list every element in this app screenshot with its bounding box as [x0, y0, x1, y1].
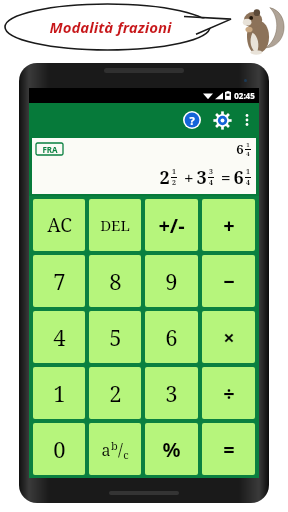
button[interactable]: 5 [89, 311, 141, 363]
button[interactable]: 9 [145, 255, 198, 307]
staticText: 3 [165, 378, 178, 408]
staticText: Modalità frazioni [49, 17, 172, 37]
staticText: 0 [53, 434, 66, 464]
staticText: / [118, 438, 123, 461]
staticText: 3 [209, 167, 213, 177]
staticText: 1 [246, 141, 250, 149]
button[interactable]: Settings [209, 107, 235, 133]
staticText: + [177, 166, 196, 189]
button[interactable]: a [89, 423, 141, 475]
button[interactable]: × [202, 311, 255, 363]
staticText: c [123, 447, 129, 462]
button[interactable]: 3 [145, 367, 198, 419]
staticText: b [111, 438, 118, 453]
staticText: ? [189, 113, 195, 128]
staticText: 6 [236, 140, 244, 158]
staticText: = [223, 436, 235, 463]
staticText: 6 [165, 322, 178, 352]
button[interactable]: AC [33, 199, 85, 251]
staticText: FRA [42, 144, 58, 155]
staticText: 4 [53, 322, 66, 352]
staticText: a [101, 439, 111, 461]
staticText: DEL [100, 215, 130, 235]
staticText: 4 [246, 150, 250, 158]
staticText: − [223, 268, 235, 295]
button[interactable]: DEL [89, 199, 141, 251]
staticText: 7 [53, 266, 66, 296]
button[interactable]: +/- [145, 199, 198, 251]
button[interactable]: + [202, 199, 255, 251]
staticText: + [223, 212, 235, 239]
staticText: 2 [172, 178, 176, 188]
button[interactable]: 1 [33, 367, 85, 419]
button[interactable]: 2 [89, 367, 141, 419]
staticText: 4 [209, 178, 213, 188]
button[interactable]: = [202, 423, 255, 475]
staticText: 3 [196, 165, 207, 190]
staticText: 1 [246, 167, 250, 177]
staticText: 6 [233, 165, 244, 190]
button[interactable]: % [145, 423, 198, 475]
staticText: AC [47, 212, 72, 238]
staticText: × [223, 324, 235, 351]
staticText: 4 [246, 178, 250, 188]
staticText: 1 [53, 378, 66, 408]
button[interactable]: FRA [32, 138, 256, 194]
button[interactable]: 4 [33, 311, 85, 363]
button[interactable]: − [202, 255, 255, 307]
button[interactable]: 7 [33, 255, 85, 307]
button[interactable]: More options [237, 110, 257, 130]
staticText: 5 [109, 322, 122, 352]
staticText: 2 [159, 165, 170, 190]
staticText: ÷ [223, 380, 235, 407]
staticText: = [214, 166, 233, 189]
staticText: 8 [109, 266, 122, 296]
staticText: +/- [158, 212, 185, 239]
staticText: 02:45 [234, 90, 255, 101]
staticText: 1 [172, 167, 176, 177]
button[interactable]: 6 [145, 311, 198, 363]
button[interactable]: 0 [33, 423, 85, 475]
staticText: 2 [109, 378, 122, 408]
button[interactable]: ÷ [202, 367, 255, 419]
staticText: % [162, 436, 181, 463]
button[interactable]: 8 [89, 255, 141, 307]
staticText: 9 [165, 266, 178, 296]
button[interactable]: Help [179, 107, 205, 133]
